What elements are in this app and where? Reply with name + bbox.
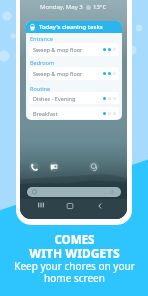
button[interactable]: Messages: [49, 162, 59, 172]
button[interactable]: Dishes - Evening: [29, 92, 119, 104]
button[interactable]: Breakfast: [29, 107, 119, 119]
button[interactable]: Sweep & mop floor: [29, 67, 119, 80]
button[interactable]: Recents: [37, 201, 45, 209]
button[interactable]: Today's cleaning tasks: [29, 21, 122, 33]
staticText: COMES: [54, 232, 95, 248]
button[interactable]: Back: [96, 202, 104, 210]
staticText: home screen: [44, 271, 105, 285]
staticText: Dishes - Evening: [33, 95, 76, 102]
button[interactable]: Phone: [29, 162, 39, 172]
staticText: Breakfast: [33, 110, 58, 117]
staticText: 13°C: [93, 3, 107, 11]
staticText: Entrance: [30, 35, 53, 42]
button[interactable]: Sweep & mop floor: [29, 43, 119, 56]
button[interactable]: Search: [27, 187, 121, 197]
button[interactable]: Camera: [89, 162, 99, 172]
staticText: Today's cleaning tasks: [39, 23, 103, 31]
staticText: Sweep & mop floor: [33, 46, 83, 53]
staticText: Monday, May 3: [40, 3, 83, 11]
staticText: Bedroom: [30, 59, 55, 66]
staticText: WITH WIDGETS: [29, 245, 120, 261]
staticText: Sweep & mop floor: [33, 70, 83, 77]
staticText: Keep your chores on your: [14, 259, 135, 273]
staticText: Routine: [30, 85, 51, 92]
button[interactable]: Home: [66, 202, 74, 210]
